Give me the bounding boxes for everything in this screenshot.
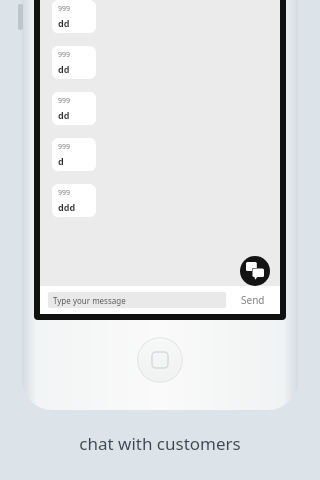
staticText: 999 (58, 4, 71, 14)
button[interactable]: 999 (52, 0, 96, 33)
button[interactable]: New chat (240, 256, 270, 286)
staticText: 999 (58, 188, 71, 198)
button[interactable]: Home (137, 337, 183, 383)
staticText: Send (241, 293, 265, 307)
staticText: d (58, 155, 64, 167)
staticText: chat with customers (79, 432, 241, 455)
staticText: ddd (58, 201, 76, 213)
staticText: Type your message (53, 295, 126, 306)
button[interactable]: 999 (52, 92, 96, 125)
button[interactable]: Type your message (48, 292, 226, 308)
staticText: 999 (58, 50, 71, 60)
button[interactable]: 999 (52, 138, 96, 171)
button[interactable]: 999 (52, 184, 96, 217)
staticText: 999 (58, 96, 71, 106)
staticText: 999 (58, 142, 71, 152)
staticText: dd (58, 17, 70, 29)
staticText: dd (58, 109, 70, 121)
button[interactable]: Send (226, 286, 280, 314)
button[interactable]: 999 (52, 46, 96, 79)
staticText: dd (58, 63, 70, 75)
